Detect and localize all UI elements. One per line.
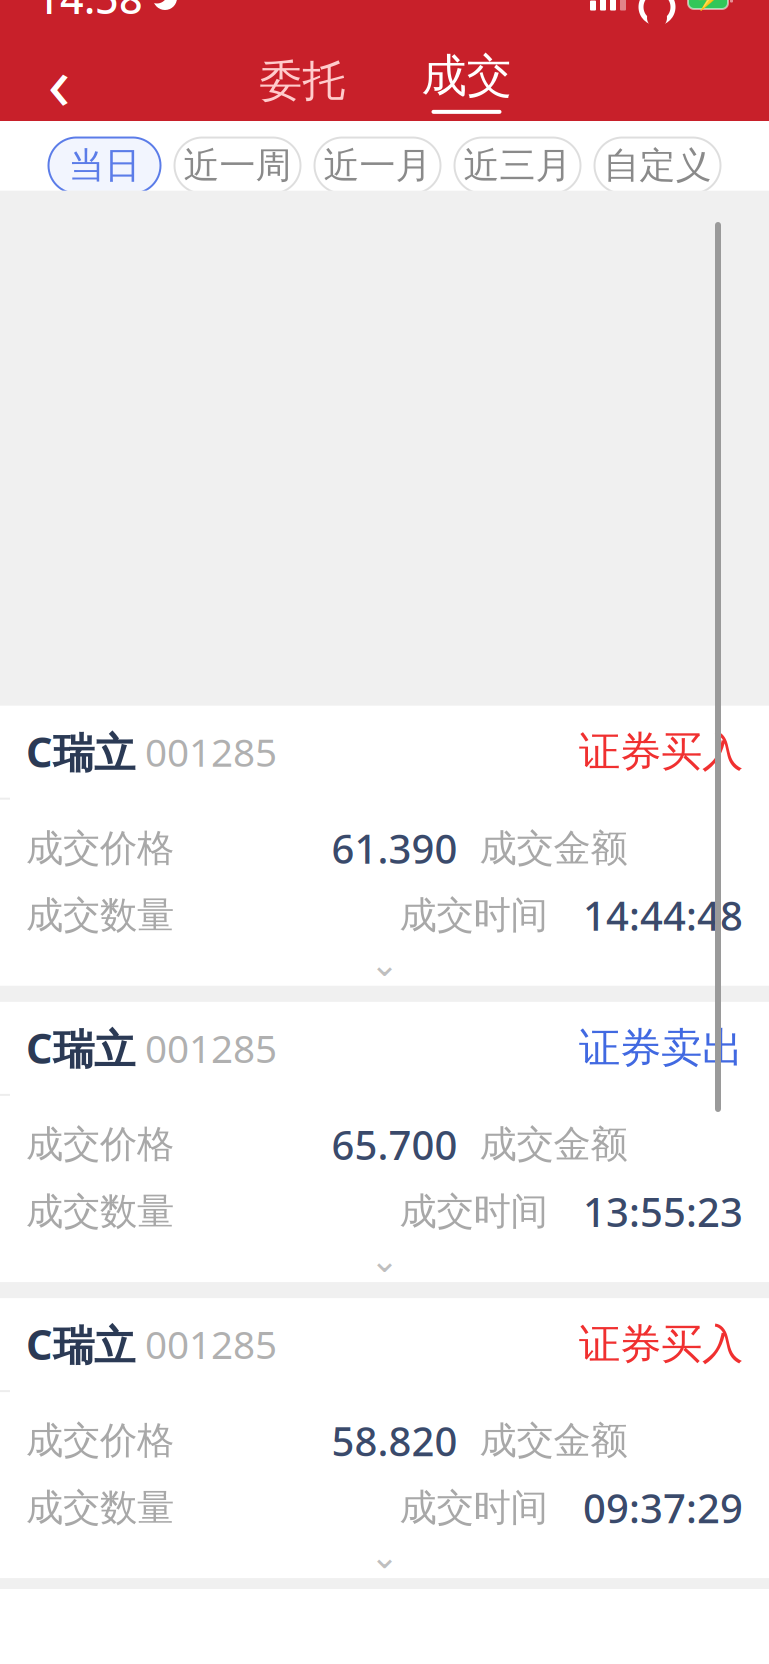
button[interactable]: 自定义	[594, 137, 720, 193]
staticText: 65.700	[331, 1118, 457, 1171]
staticText: ⌄	[370, 1537, 399, 1576]
staticText: 成交价格	[26, 1121, 174, 1167]
staticText: 13:55:23	[583, 1185, 743, 1238]
staticText: 14:58	[36, 0, 143, 25]
staticText: 001285	[135, 726, 277, 777]
staticText: 成交时间	[399, 892, 547, 938]
button[interactable]: 成交	[416, 41, 516, 121]
staticText: 近一周	[183, 143, 291, 188]
staticText: 61.390	[331, 822, 457, 875]
staticText: 成交金额	[479, 1418, 627, 1464]
button[interactable]: C瑞立	[0, 1298, 769, 1578]
staticText: 成交金额	[479, 1121, 627, 1167]
staticText: 证券买入	[579, 1319, 743, 1369]
staticText: 委托	[259, 55, 345, 107]
staticText: ‹	[47, 31, 70, 131]
staticText: C瑞立	[26, 724, 135, 779]
staticText: 证券卖出	[579, 1022, 743, 1073]
staticText: 成交	[421, 48, 511, 104]
staticText: 当日	[68, 143, 140, 188]
staticText: 成交数量	[26, 892, 174, 938]
staticText: 自定义	[603, 143, 711, 188]
button[interactable]: Back	[20, 42, 98, 120]
button[interactable]: 当日	[48, 137, 160, 193]
staticText: ⚡	[694, 0, 722, 11]
staticText: 成交价格	[26, 1418, 174, 1464]
button[interactable]: C瑞立	[0, 706, 769, 986]
staticText: 09:37:29	[583, 1481, 743, 1534]
staticText: 成交时间	[399, 1485, 547, 1531]
staticText: C瑞立	[26, 1020, 135, 1075]
staticText: ⌄	[370, 944, 399, 983]
staticText: 成交数量	[26, 1485, 174, 1531]
button[interactable]: C瑞立	[0, 1002, 769, 1282]
staticText: 成交数量	[26, 1189, 174, 1234]
staticText: 证券买入	[579, 726, 743, 777]
button[interactable]: 近三月	[454, 137, 580, 193]
staticText: ⌄	[370, 1240, 399, 1280]
staticText: 14:44:48	[583, 889, 743, 942]
staticText: 近一月	[323, 143, 431, 188]
staticText: 成交金额	[479, 825, 627, 871]
button[interactable]: 委托	[252, 41, 352, 121]
staticText: 成交价格	[26, 825, 174, 871]
staticText: 成交时间	[399, 1189, 547, 1234]
staticText: C瑞立	[26, 1317, 135, 1372]
button[interactable]: 近一周	[174, 137, 300, 193]
button[interactable]: 近一月	[314, 137, 440, 193]
staticText: 近三月	[463, 143, 571, 188]
staticText: 001285	[135, 1022, 277, 1073]
staticText: 001285	[135, 1318, 277, 1370]
staticText: 58.820	[331, 1414, 457, 1467]
